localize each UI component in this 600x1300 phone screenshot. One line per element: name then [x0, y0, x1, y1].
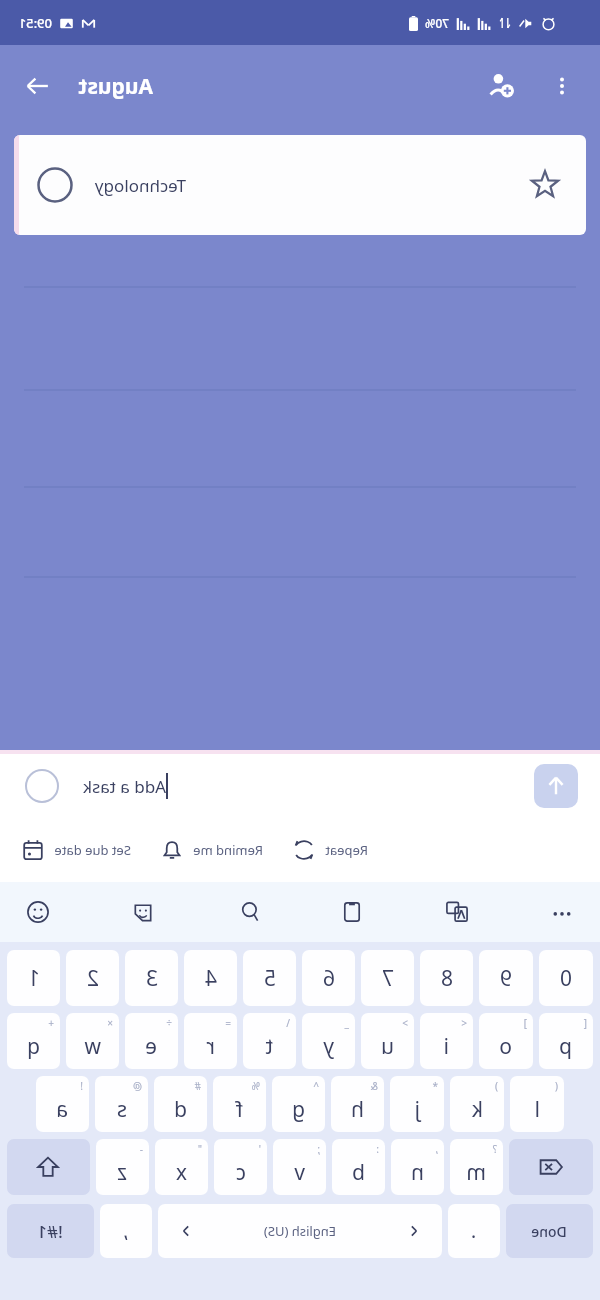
button[interactable]: ;	[273, 1139, 326, 1195]
button[interactable]: 1	[7, 950, 60, 1006]
staticText: ?	[492, 1142, 497, 1156]
staticText: ^	[313, 1079, 319, 1093]
button[interactable]: Done	[506, 1204, 593, 1258]
staticText: i	[443, 1032, 449, 1061]
button[interactable]: ,	[100, 1204, 152, 1258]
staticText: %	[251, 1079, 260, 1093]
button[interactable]: @	[95, 1076, 148, 1132]
button[interactable]: :	[332, 1139, 385, 1195]
staticText: English (US)	[263, 1222, 336, 1240]
button[interactable]: %	[213, 1076, 266, 1132]
button[interactable]: English (US)	[158, 1204, 442, 1258]
staticText: b	[352, 1158, 365, 1187]
button[interactable]: ?	[450, 1139, 503, 1195]
button[interactable]: "	[155, 1139, 208, 1195]
staticText: >	[402, 1016, 408, 1030]
staticText: h	[351, 1095, 364, 1124]
button[interactable]: ]	[479, 1013, 533, 1069]
staticText: 3	[145, 964, 158, 993]
button[interactable]: *	[390, 1076, 444, 1132]
button[interactable]: (	[510, 1076, 564, 1132]
button[interactable]: Shift	[7, 1139, 90, 1195]
button[interactable]: =	[184, 1013, 237, 1069]
staticText: #	[194, 1079, 201, 1093]
staticText: (	[555, 1079, 558, 1093]
button[interactable]: Remind me	[157, 833, 267, 867]
staticText: August	[78, 72, 153, 101]
button[interactable]: Backspace	[509, 1139, 593, 1195]
button[interactable]: Clipboard	[330, 890, 374, 934]
staticText: ]	[523, 1016, 527, 1030]
button[interactable]: )	[450, 1076, 504, 1132]
staticText: )	[495, 1079, 498, 1093]
staticText: u	[381, 1032, 394, 1061]
staticText: @	[133, 1079, 142, 1093]
staticText: 7	[381, 964, 394, 993]
button[interactable]: ,	[391, 1139, 444, 1195]
staticText: ÷	[166, 1016, 172, 1030]
button[interactable]: 2	[66, 950, 119, 1006]
button[interactable]: Translate	[435, 890, 479, 934]
button[interactable]: Stickers	[121, 890, 165, 934]
button[interactable]: &	[331, 1076, 384, 1132]
button[interactable]: -	[96, 1139, 149, 1195]
staticText: *	[432, 1079, 438, 1093]
button[interactable]: ^	[272, 1076, 325, 1132]
button[interactable]: #	[154, 1076, 207, 1132]
staticText: Repeat	[325, 841, 368, 859]
staticText: 2	[86, 964, 99, 993]
staticText: 70%	[425, 15, 449, 31]
staticText: +	[48, 1016, 54, 1030]
staticText: 09:51	[18, 14, 52, 32]
button[interactable]: New task checkbox	[22, 766, 62, 806]
staticText: &	[370, 1079, 378, 1093]
button[interactable]: 3	[125, 950, 178, 1006]
button[interactable]: Star task	[522, 162, 568, 208]
button[interactable]: _	[302, 1013, 355, 1069]
button[interactable]: +	[7, 1013, 60, 1069]
staticText: :	[376, 1142, 379, 1156]
button[interactable]: Emoji	[16, 890, 60, 934]
staticText: =	[225, 1016, 231, 1030]
button[interactable]: [	[539, 1013, 593, 1069]
button[interactable]: 8	[420, 950, 473, 1006]
staticText: '	[258, 1142, 261, 1156]
button[interactable]: Send	[534, 764, 578, 808]
button[interactable]: More	[540, 890, 584, 934]
button[interactable]: Back	[14, 62, 62, 110]
staticText: x	[175, 1158, 187, 1187]
button[interactable]: .	[448, 1204, 500, 1258]
button[interactable]: 5	[243, 950, 296, 1006]
button[interactable]: More options	[538, 62, 586, 110]
staticText: j	[414, 1095, 420, 1124]
button[interactable]: 4	[184, 950, 237, 1006]
button[interactable]: 9	[479, 950, 533, 1006]
button[interactable]: 6	[302, 950, 355, 1006]
button[interactable]: Set due date	[18, 833, 135, 867]
staticText: m	[466, 1158, 486, 1187]
button[interactable]: Search	[226, 890, 270, 934]
button[interactable]: !#1	[7, 1204, 94, 1258]
button[interactable]: 0	[539, 950, 593, 1006]
button[interactable]: Add person	[478, 62, 526, 110]
button[interactable]: \	[243, 1013, 296, 1069]
staticText: w	[84, 1032, 101, 1061]
button[interactable]: '	[214, 1139, 267, 1195]
button[interactable]: <	[420, 1013, 473, 1069]
button[interactable]: ÷	[125, 1013, 178, 1069]
staticText: -	[139, 1142, 143, 1156]
button[interactable]: Mark complete	[32, 162, 78, 208]
button[interactable]: >	[361, 1013, 414, 1069]
staticText: 6	[322, 964, 335, 993]
button[interactable]: Repeat	[289, 833, 372, 867]
staticText: ×	[107, 1016, 113, 1030]
staticText: v	[294, 1158, 305, 1187]
button[interactable]: !	[36, 1076, 89, 1132]
button[interactable]: ×	[66, 1013, 119, 1069]
staticText: [	[583, 1016, 587, 1030]
staticText: n	[411, 1158, 424, 1187]
button[interactable]: Star task	[14, 135, 586, 235]
staticText: !#1	[37, 1220, 63, 1243]
staticText: r	[206, 1032, 215, 1061]
button[interactable]: 7	[361, 950, 414, 1006]
